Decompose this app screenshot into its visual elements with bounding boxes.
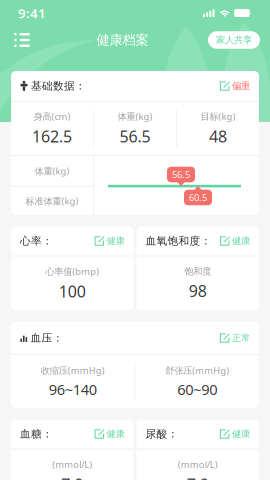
staticText: 血氧饱和度： — [145, 234, 211, 247]
button[interactable]: 健康 — [220, 427, 250, 441]
button[interactable]: 健康 — [94, 427, 124, 441]
staticText: 收缩压(mmHg) — [41, 364, 105, 376]
staticText: (mmol/L) — [52, 458, 92, 471]
staticText: 健康 — [232, 428, 250, 440]
button[interactable]: 菜单 — [7, 27, 37, 53]
staticText: 家人共享 — [216, 34, 252, 46]
staticText: 7.0 — [61, 474, 83, 480]
staticText: 饱和度 — [184, 266, 211, 277]
staticText: 偏重 — [232, 80, 250, 92]
staticText: 56.5 — [119, 126, 150, 147]
staticText: 目标(kg) — [200, 110, 235, 123]
staticText: 血压： — [30, 331, 63, 344]
staticText: 健康 — [106, 235, 124, 247]
staticText: 48 — [209, 126, 227, 147]
staticText: 尿酸： — [145, 427, 178, 440]
staticText: (mmol/L) — [178, 458, 218, 471]
staticText: 心率值(bmp) — [45, 265, 99, 278]
staticText: 7.0 — [187, 474, 209, 480]
staticText: 健康 — [232, 235, 250, 247]
button[interactable]: 家人共享 — [208, 31, 260, 49]
staticText: 血糖： — [20, 427, 53, 440]
staticText: 基础数据： — [31, 79, 86, 92]
button[interactable]: 正常 — [220, 331, 250, 345]
button[interactable]: 健康 — [220, 234, 250, 248]
staticText: 162.5 — [32, 126, 72, 147]
staticText: 9:41 — [18, 4, 46, 22]
button[interactable]: 健康 — [94, 234, 124, 248]
staticText: 60.5 — [189, 191, 207, 204]
staticText: 100 — [59, 281, 86, 302]
staticText: 60~90 — [177, 379, 217, 399]
staticText: 身高(cm) — [33, 110, 70, 123]
staticText: 体重(kg) — [117, 110, 152, 123]
staticText: 96~140 — [49, 379, 97, 399]
staticText: 健康档案 — [96, 32, 148, 48]
staticText: 心率： — [20, 234, 53, 247]
staticText: 98 — [189, 280, 207, 301]
staticText: 标准体重(kg) — [25, 195, 78, 207]
staticText: 56.5 — [172, 168, 190, 181]
button[interactable]: 偏重 — [220, 79, 250, 93]
staticText: 正常 — [232, 332, 250, 344]
staticText: 体重(kg) — [34, 165, 69, 177]
staticText: 健康 — [106, 428, 124, 440]
staticText: 舒张压(mmHg) — [165, 364, 229, 376]
